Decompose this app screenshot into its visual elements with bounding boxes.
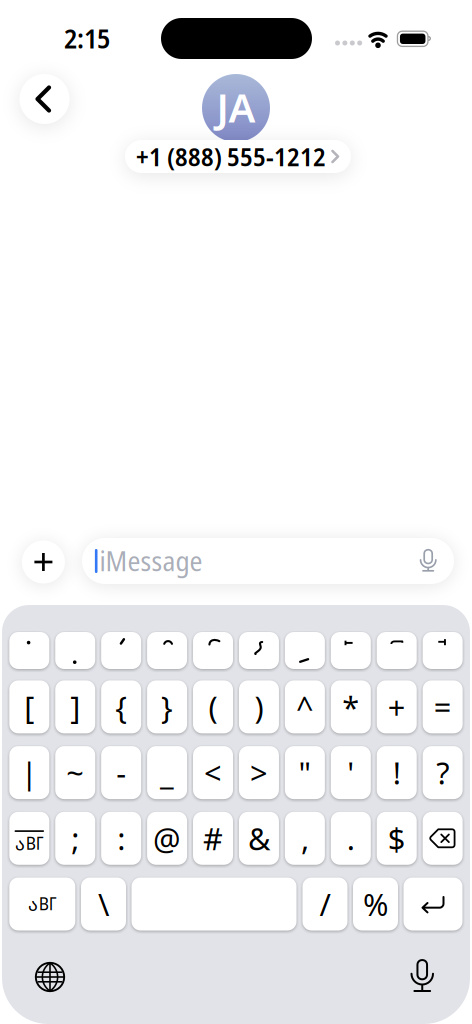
staticText: * [342, 686, 359, 727]
staticText: < [204, 752, 222, 793]
button[interactable]: Hook mark [193, 632, 233, 669]
button[interactable]: Overline hook [377, 632, 417, 669]
button[interactable]: Dictate [419, 549, 437, 573]
button[interactable]: [ [9, 680, 49, 733]
button[interactable]: - [101, 746, 141, 799]
staticText: ] [70, 686, 80, 727]
button[interactable]: _ [147, 746, 187, 799]
staticText: > [250, 752, 268, 793]
staticText: ა [28, 892, 38, 916]
staticText: = [434, 686, 452, 727]
staticText: ~ [66, 752, 84, 793]
staticText: BΓ [39, 892, 57, 915]
button[interactable]: ; [55, 812, 95, 865]
button[interactable]: Dictation [410, 959, 434, 992]
staticText: ? [436, 752, 449, 793]
button[interactable]: / [302, 877, 347, 930]
staticText: \ [98, 884, 109, 924]
button[interactable]: Back [19, 74, 69, 124]
button[interactable]: = [423, 680, 463, 733]
button[interactable]: & [239, 812, 279, 865]
staticText: . [347, 818, 355, 859]
staticText: _ [160, 752, 174, 793]
staticText: ) [254, 686, 263, 727]
button[interactable]: : [101, 812, 141, 865]
button[interactable]: ) [239, 680, 279, 733]
staticText: $ [388, 818, 406, 859]
button[interactable]: ' [331, 746, 371, 799]
staticText: ა [15, 831, 25, 856]
button[interactable]: # [193, 812, 233, 865]
button[interactable]: { [101, 680, 141, 733]
staticText: ; [71, 818, 79, 859]
button[interactable]: iMessage [82, 538, 454, 584]
staticText: / [319, 884, 330, 924]
button[interactable]: ^ [285, 680, 325, 733]
button[interactable]: $ [377, 812, 417, 865]
button[interactable]: Period [55, 632, 95, 669]
staticText: +1 (888) 555-1212 [136, 139, 326, 174]
button[interactable]: Acute accent [101, 632, 141, 669]
staticText: : [117, 818, 125, 859]
staticText: [ [24, 686, 34, 727]
button[interactable]: } [147, 680, 187, 733]
button[interactable]: > [239, 746, 279, 799]
staticText: { [115, 686, 127, 727]
staticText: - [116, 752, 126, 793]
staticText: + [388, 686, 406, 727]
button[interactable]: Inverted breve [147, 632, 187, 669]
button[interactable]: ? [423, 746, 463, 799]
button[interactable]: Next keyboard [35, 962, 65, 992]
button[interactable]: @ [147, 812, 187, 865]
button[interactable]: + [377, 680, 417, 733]
button[interactable]: Squiggle mark [239, 632, 279, 669]
button[interactable]: ა [9, 812, 49, 865]
button[interactable]: % [353, 877, 398, 930]
button[interactable]: ( [193, 680, 233, 733]
button[interactable]: Add attachment [22, 540, 65, 583]
staticText: ! [393, 752, 401, 793]
staticText: iMessage [99, 541, 202, 579]
staticText: " [298, 752, 311, 793]
button[interactable]: Dot above [9, 632, 49, 669]
button[interactable]: \ [81, 877, 126, 930]
button[interactable]: Right tack [423, 632, 463, 669]
button[interactable]: Space [131, 877, 296, 930]
button[interactable]: ა [9, 877, 75, 930]
staticText: } [161, 686, 173, 727]
staticText: JA [216, 80, 255, 134]
staticText: @ [153, 818, 181, 859]
button[interactable]: Low dash [285, 632, 325, 669]
button[interactable]: Delete [423, 812, 463, 865]
staticText: % [363, 884, 388, 924]
button[interactable]: , [285, 812, 325, 865]
button[interactable]: . [331, 812, 371, 865]
staticText: & [248, 818, 270, 859]
button[interactable]: " [285, 746, 325, 799]
button[interactable]: ] [55, 680, 95, 733]
staticText: ^ [296, 686, 314, 727]
staticText: 2:15 [64, 19, 110, 57]
staticText: # [203, 818, 223, 859]
button[interactable]: < [193, 746, 233, 799]
staticText: ( [208, 686, 217, 727]
staticText: | [21, 752, 38, 793]
staticText: , [301, 818, 309, 859]
button[interactable]: | [9, 746, 49, 799]
button[interactable]: ~ [55, 746, 95, 799]
button[interactable]: +1 (888) 555-1212 [125, 140, 351, 173]
staticText: BΓ [26, 831, 44, 855]
button[interactable]: * [331, 680, 371, 733]
button[interactable]: ! [377, 746, 417, 799]
button[interactable]: Return [403, 877, 462, 930]
button[interactable]: Left tack [331, 632, 371, 669]
staticText: ' [347, 752, 354, 793]
